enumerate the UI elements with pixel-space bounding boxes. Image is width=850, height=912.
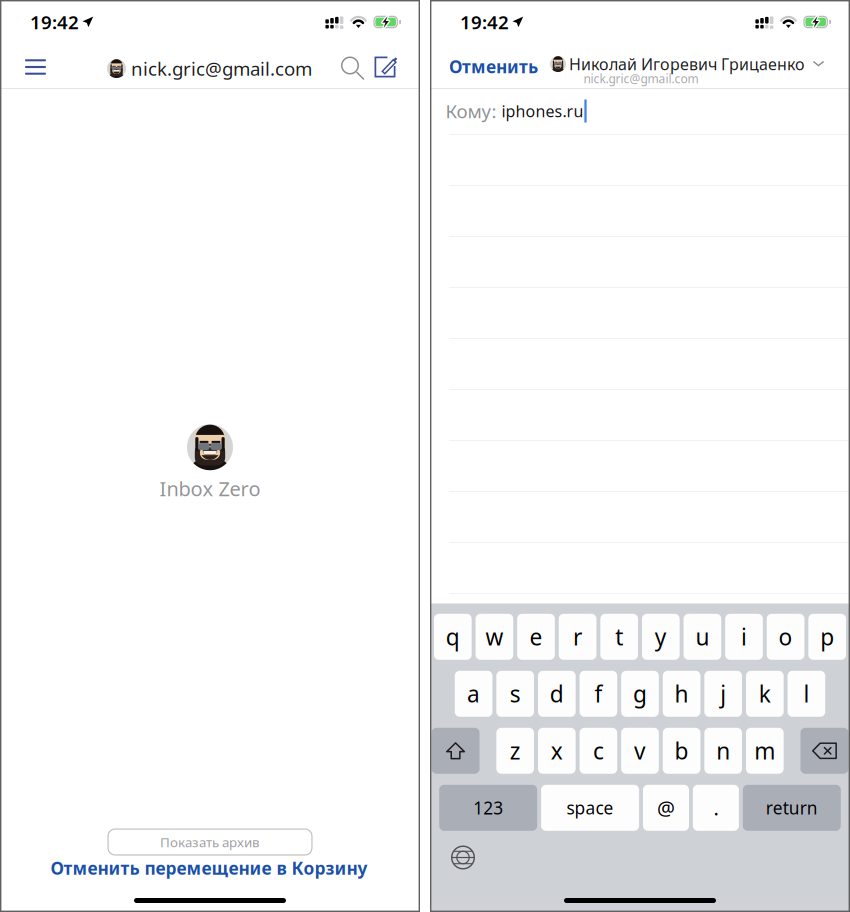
staticText: b [675, 736, 689, 766]
staticText: Отменить [449, 55, 538, 78]
staticText: m [754, 736, 775, 766]
staticText: q [446, 622, 460, 652]
button[interactable]: q [434, 614, 472, 660]
staticText: Отменить перемещение в Корзину [50, 856, 367, 879]
staticText: c [593, 736, 604, 766]
button[interactable]: Search [337, 46, 367, 90]
staticText: . [713, 794, 718, 821]
staticText: f [594, 679, 602, 709]
staticText: o [779, 622, 793, 652]
staticText: space [567, 796, 614, 819]
staticText: j [720, 679, 726, 709]
button[interactable]: a [455, 671, 492, 717]
staticText: nick.gric@gmail.com [583, 70, 698, 86]
button[interactable]: Switch keyboard [446, 840, 480, 874]
button[interactable]: y [642, 614, 680, 660]
button[interactable]: z [496, 728, 534, 774]
staticText: l [803, 679, 809, 709]
staticText: g [633, 679, 647, 709]
button[interactable]: l [787, 671, 825, 717]
staticText: 19:42 [460, 10, 509, 34]
staticText: t [615, 622, 623, 652]
button[interactable]: b [663, 728, 700, 774]
staticText: a [467, 679, 480, 709]
staticText: v [634, 736, 646, 766]
button[interactable]: i [725, 614, 763, 660]
staticText: n [716, 736, 730, 766]
button[interactable]: 123 [439, 785, 537, 831]
button[interactable]: o [767, 614, 804, 660]
button[interactable]: f [579, 671, 617, 717]
button[interactable]: @ [643, 785, 689, 831]
button[interactable]: n [704, 728, 742, 774]
staticText: h [675, 679, 689, 709]
staticText: z [510, 736, 521, 766]
button[interactable]: m [746, 728, 784, 774]
staticText: u [695, 622, 709, 652]
staticText: return [766, 796, 818, 819]
staticText: w [485, 622, 503, 652]
button[interactable]: r [559, 614, 596, 660]
button[interactable]: c [579, 728, 617, 774]
button[interactable]: Compose [372, 45, 398, 89]
staticText: d [550, 679, 564, 709]
staticText: Николай Игоревич Грицаенко [569, 53, 805, 75]
button[interactable]: space [541, 785, 639, 831]
staticText: iphones.ru [501, 100, 583, 122]
staticText: nick.gric@gmail.com [131, 56, 312, 81]
button[interactable]: u [684, 614, 721, 660]
button[interactable]: j [704, 671, 742, 717]
staticText: r [573, 622, 582, 652]
staticText: Показать архив [160, 833, 260, 851]
staticText: 19:42 [30, 10, 79, 34]
button[interactable]: Shift [432, 728, 480, 774]
staticText: s [510, 679, 521, 709]
staticText: 123 [473, 796, 503, 819]
button[interactable]: . [693, 785, 739, 831]
button[interactable]: Показать архив [107, 828, 312, 855]
staticText: p [820, 622, 834, 652]
button[interactable]: Отменить [446, 49, 541, 84]
button[interactable]: Отменить перемещение в Корзину [50, 853, 367, 882]
button[interactable]: v [621, 728, 659, 774]
staticText: k [759, 679, 771, 709]
button[interactable]: w [476, 614, 513, 660]
staticText: x [551, 736, 563, 766]
button[interactable]: s [496, 671, 534, 717]
staticText: y [655, 622, 667, 652]
button[interactable]: Menu [13, 45, 57, 89]
button[interactable]: e [517, 614, 555, 660]
button[interactable]: d [538, 671, 576, 717]
staticText: i [741, 622, 747, 652]
staticText: Кому: [445, 99, 501, 123]
button[interactable]: k [746, 671, 784, 717]
staticText: @ [657, 794, 675, 821]
button[interactable]: p [808, 614, 846, 660]
button[interactable]: t [600, 614, 638, 660]
staticText: Inbox Zero [159, 475, 260, 502]
button[interactable]: g [621, 671, 659, 717]
button[interactable]: Delete [800, 728, 848, 774]
staticText: e [529, 622, 542, 652]
button[interactable]: return [743, 785, 841, 831]
button[interactable]: x [538, 728, 576, 774]
button[interactable]: h [663, 671, 700, 717]
